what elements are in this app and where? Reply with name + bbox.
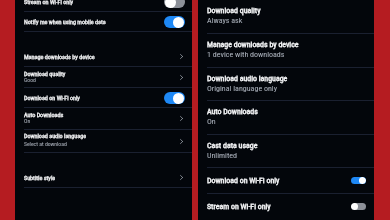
staticText: Download on Wi-Fi only bbox=[24, 94, 80, 101]
staticText: Manage downloads by device bbox=[24, 53, 95, 60]
staticText: Subtitle style bbox=[24, 174, 56, 181]
staticText: Cast data usage bbox=[207, 141, 258, 150]
button[interactable]: On bbox=[351, 177, 366, 184]
button[interactable]: Stream on Wi-Fi only bbox=[198, 194, 374, 219]
button[interactable]: Cast data usage bbox=[198, 135, 374, 167]
staticText: Stream on Wi-Fi only bbox=[24, 0, 74, 5]
staticText: Download quality bbox=[207, 6, 261, 15]
staticText: Download quality bbox=[24, 70, 66, 77]
button[interactable]: Download on Wi-Fi only bbox=[198, 168, 374, 193]
staticText: Original language only bbox=[207, 84, 278, 93]
staticText: Auto Downloads bbox=[207, 107, 258, 116]
button[interactable]: On bbox=[164, 16, 185, 28]
staticText: Auto Downloads bbox=[24, 111, 64, 118]
staticText: Manage downloads by device bbox=[207, 40, 299, 49]
button[interactable]: Download quality bbox=[15, 67, 192, 87]
button[interactable]: Stream on Wi-Fi only bbox=[15, 0, 192, 11]
button[interactable]: Auto Downloads bbox=[198, 101, 374, 134]
staticText: On bbox=[24, 118, 31, 125]
button[interactable]: Download quality bbox=[198, 0, 374, 33]
button[interactable]: Manage downloads by device bbox=[15, 46, 192, 66]
button[interactable]: On bbox=[164, 92, 185, 104]
staticText: Select at download bbox=[24, 141, 67, 148]
staticText: On bbox=[207, 117, 216, 126]
button[interactable]: Manage downloads by device bbox=[198, 34, 374, 67]
button[interactable]: Auto Downloads bbox=[15, 108, 192, 129]
button[interactable]: Download on Wi-Fi only bbox=[15, 88, 192, 107]
staticText: Good bbox=[24, 77, 36, 84]
button[interactable]: Subtitle style bbox=[15, 167, 192, 187]
button[interactable]: Download audio language bbox=[198, 68, 374, 100]
button[interactable]: Notify me when using mobile data bbox=[15, 12, 192, 31]
staticText: Download audio language bbox=[207, 74, 288, 83]
staticText: Always ask bbox=[207, 16, 243, 25]
button[interactable]: Off bbox=[351, 203, 366, 210]
staticText: Notify me when using mobile data bbox=[24, 18, 106, 25]
button[interactable]: Off bbox=[164, 0, 185, 8]
staticText: 1 device with downloads bbox=[207, 50, 285, 59]
staticText: Stream on Wi-Fi only bbox=[207, 202, 271, 211]
staticText: Unlimited bbox=[207, 151, 237, 160]
button[interactable]: Download audio language bbox=[15, 130, 192, 152]
staticText: Download on Wi-Fi only bbox=[207, 176, 280, 185]
staticText: Download audio language bbox=[24, 132, 86, 139]
